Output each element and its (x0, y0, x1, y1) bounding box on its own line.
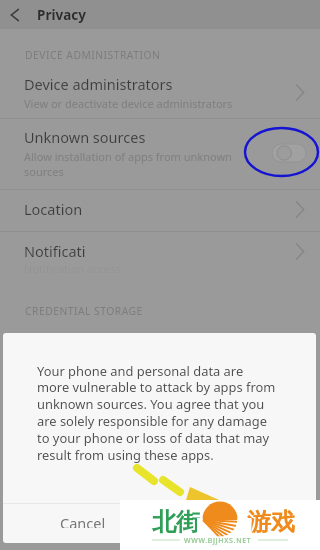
button[interactable]: Back (0, 0, 30, 29)
staticText: Device administrators (24, 74, 173, 94)
staticText: Unknown sources (24, 127, 146, 147)
button[interactable]: Location (0, 188, 320, 230)
staticText: 北街 (152, 507, 200, 537)
staticText: Privacy (37, 6, 86, 24)
button[interactable]: Cancel (48, 504, 118, 537)
staticText: View or deactivate device administrators (24, 96, 233, 111)
staticText: Cancel (60, 513, 106, 528)
button[interactable]: Device administrators (0, 66, 320, 118)
staticText: DEVICE ADMINISTRATION (25, 48, 161, 62)
staticText: Notificati (24, 241, 86, 261)
staticText: WWW.BJJHXS.NET (184, 536, 252, 546)
button[interactable]: Unknown sources (0, 116, 320, 189)
staticText: CREDENTIAL STORAGE (25, 304, 143, 318)
staticText: Your phone and personal data are more vu… (37, 362, 276, 464)
button[interactable]: Unknown sources switch (272, 144, 306, 162)
button[interactable]: Notificati (0, 230, 320, 272)
staticText: Allow installation of apps from unknown … (24, 149, 232, 179)
staticText: Location (24, 199, 295, 219)
staticText: 游戏 (247, 507, 295, 537)
